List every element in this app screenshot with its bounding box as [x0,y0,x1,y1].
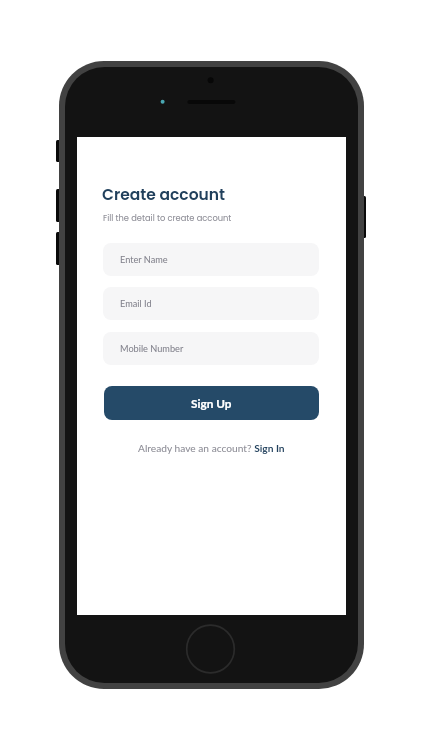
staticText: Already have an account? Sign In [138,442,285,454]
staticText: Sign Up [191,396,232,410]
staticText: Email Id [120,298,152,309]
button[interactable]: Mobile Number [103,332,319,365]
staticText: Mobile Number [120,343,184,354]
staticText: Fill the detail to create account [103,212,232,224]
button[interactable]: Email Id [103,287,319,320]
button[interactable]: Enter Name [103,243,319,276]
staticText: Enter Name [120,254,168,265]
button[interactable]: Sign Up [104,386,319,420]
staticText: Create account [102,184,226,206]
button[interactable]: Already have an account? Sign In [134,440,289,456]
